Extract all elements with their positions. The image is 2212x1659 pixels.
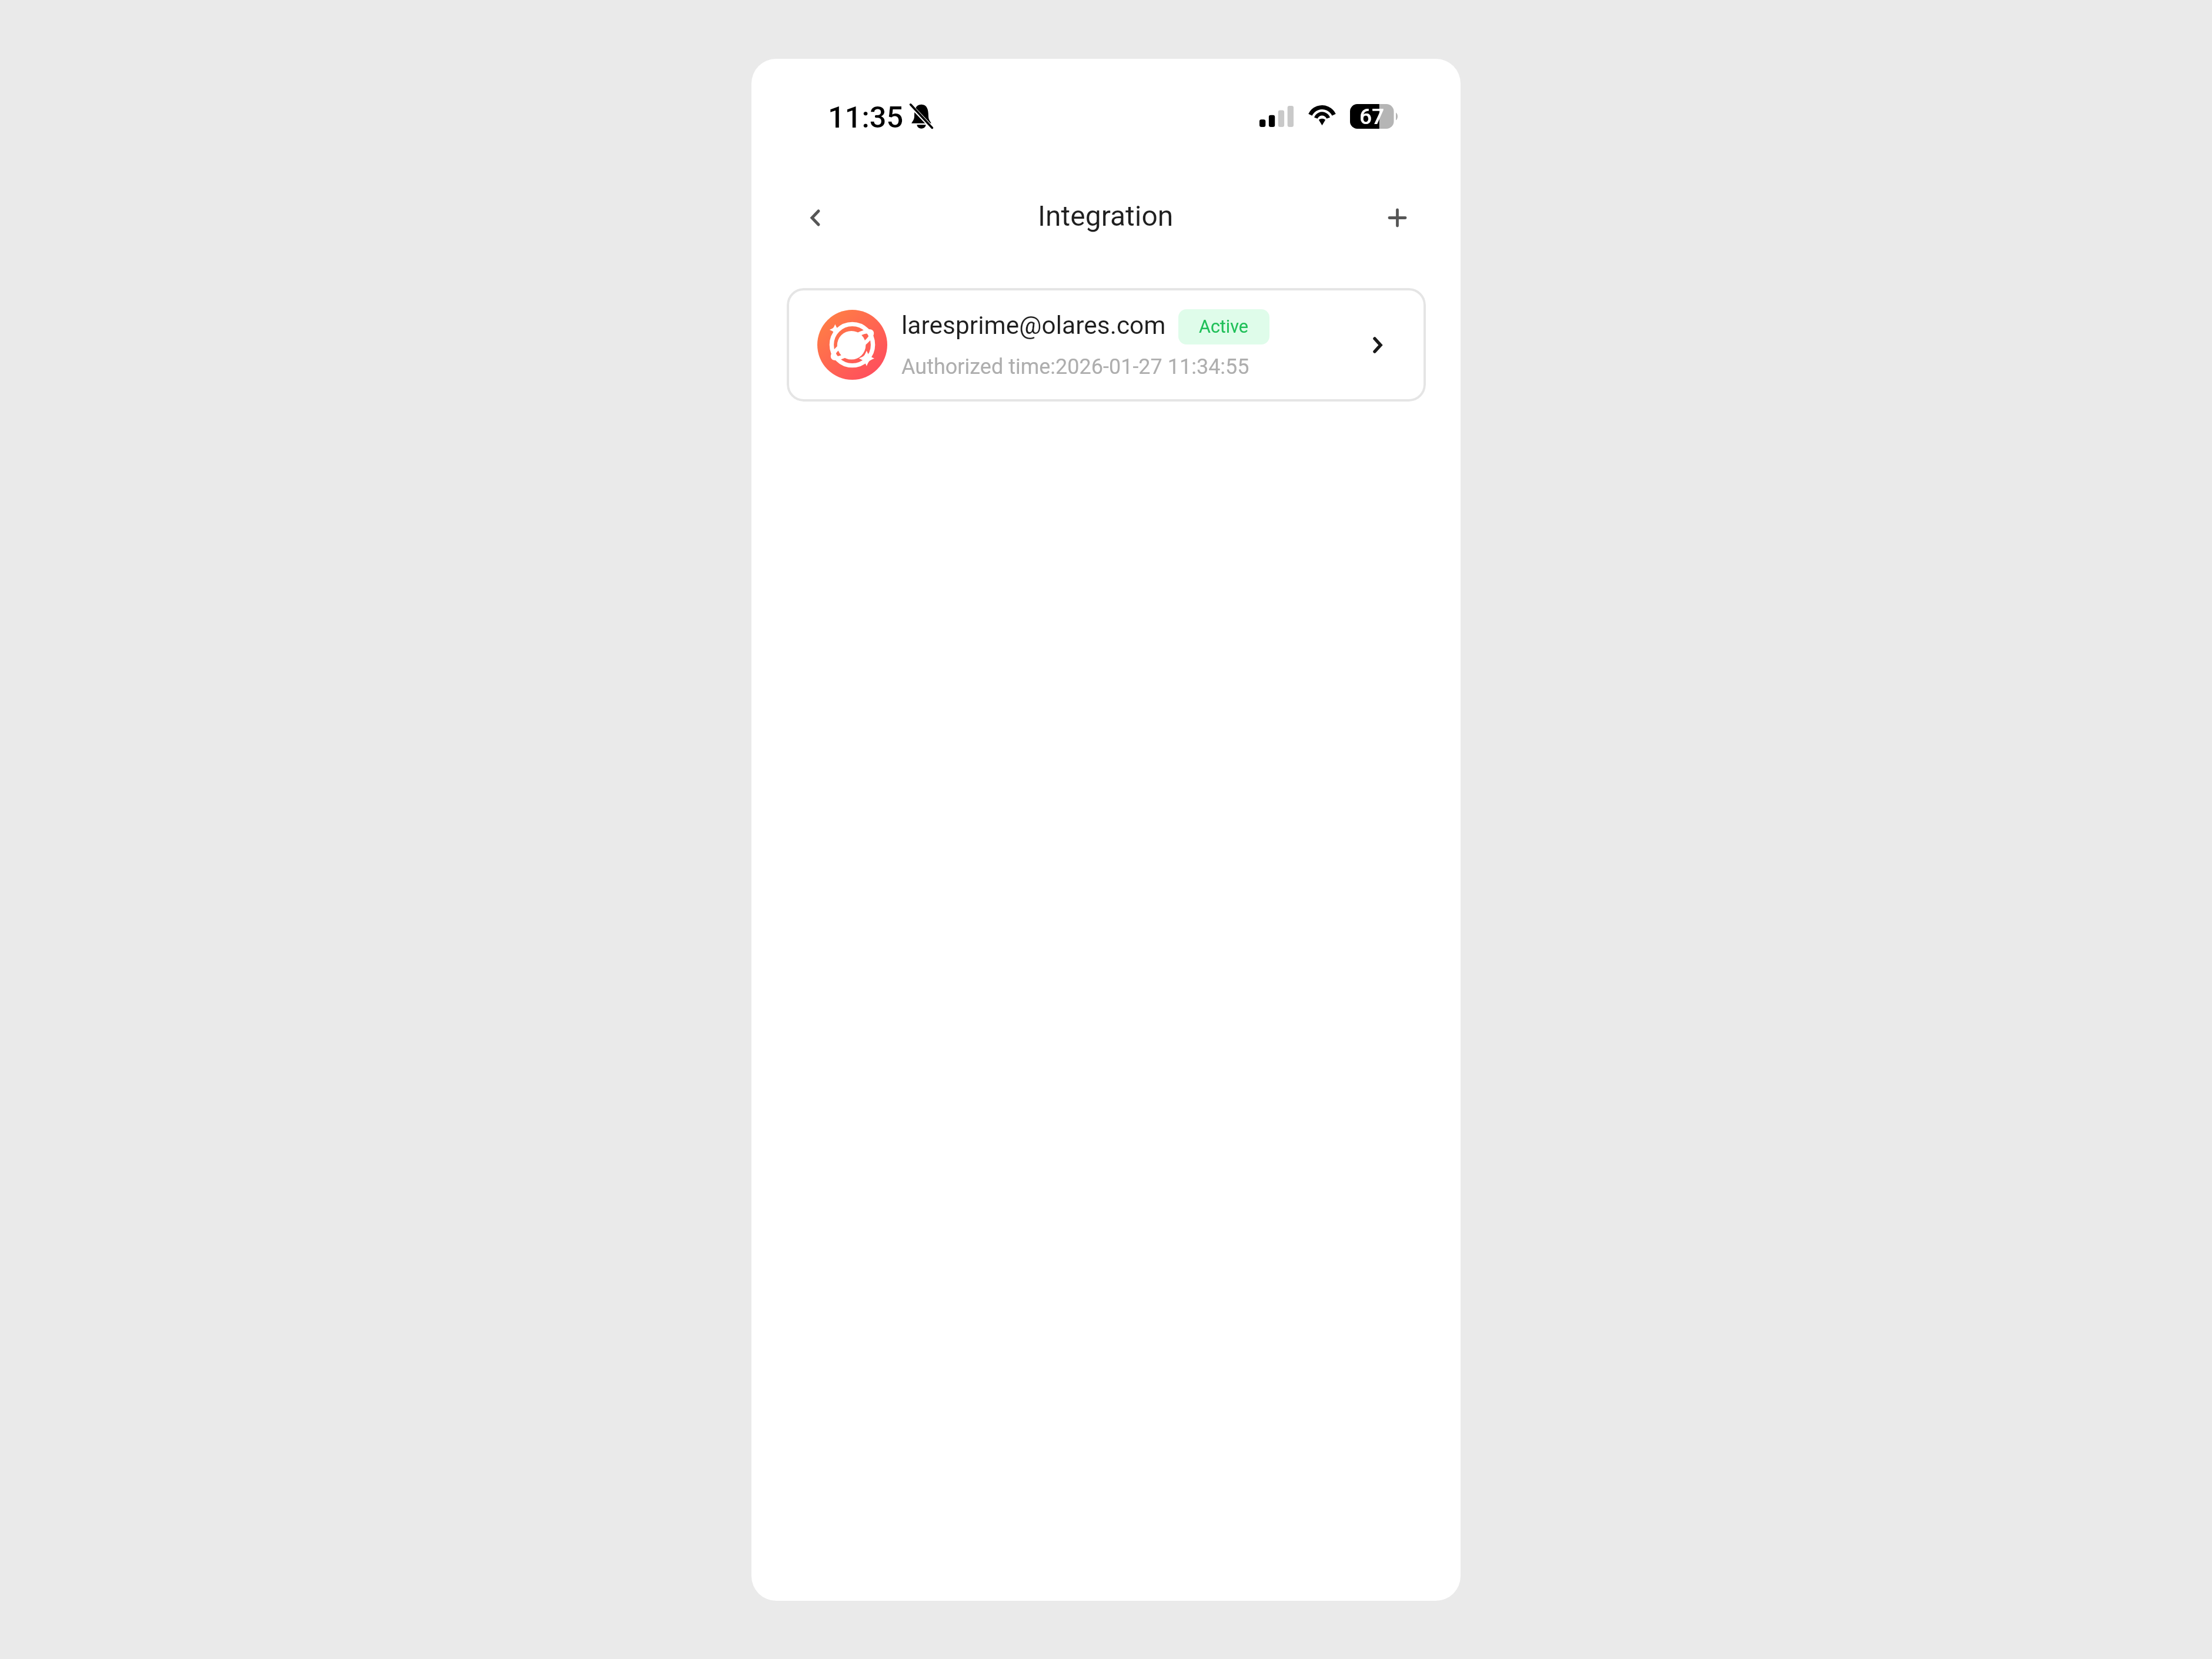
staticText: 67: [1359, 104, 1385, 129]
staticText: laresprime@olares.com: [901, 311, 1166, 340]
staticText: Active: [1199, 316, 1249, 337]
staticText: 11:35: [828, 100, 904, 135]
button[interactable]: Add: [1374, 194, 1421, 241]
button[interactable]: laresprime@olares.com: [787, 288, 1426, 402]
button[interactable]: Back: [791, 194, 838, 241]
staticText: Authorized time:2026-01-27 11:34:55: [901, 354, 1249, 379]
staticText: Integration: [1038, 199, 1174, 232]
